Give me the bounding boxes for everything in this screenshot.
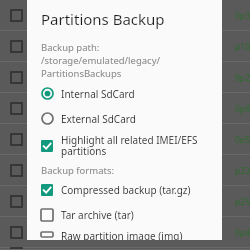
staticText: p25 xyxy=(235,196,250,208)
button[interactable]: Raw partition image (img) xyxy=(41,229,214,240)
staticText: 0p3 xyxy=(235,10,250,22)
button[interactable]: Partition 0p2 xyxy=(0,62,250,93)
staticText: Compressed backup (tar.gz) xyxy=(61,183,191,197)
button[interactable]: Partition p10 xyxy=(0,31,250,62)
button[interactable]: Partition p23 xyxy=(0,155,250,186)
staticText: Highlight all related IMEI/EFS partition… xyxy=(61,133,198,158)
button[interactable]: Partition 0p7 xyxy=(0,248,250,250)
staticText: Backup path: /storage/emulated/legacy/ P… xyxy=(41,41,161,80)
staticText: p10 xyxy=(235,41,250,53)
staticText: 0p5 xyxy=(235,134,250,146)
button[interactable]: Tar archive (tar) xyxy=(41,204,214,225)
staticText: 0p8 xyxy=(235,103,250,115)
button[interactable]: Partition 0p8 xyxy=(0,93,250,124)
staticText: External SdCard xyxy=(61,112,136,126)
staticText: Raw partition image (img) xyxy=(61,229,183,240)
button[interactable]: Highlight all related IMEI/EFS partition… xyxy=(41,133,214,158)
staticText: Internal SdCard xyxy=(61,87,135,101)
staticText: 0p4 xyxy=(235,227,250,239)
button[interactable]: Partition 0p3 xyxy=(0,0,250,31)
button[interactable]: Internal SdCard xyxy=(41,83,214,104)
staticText: Partitions Backup xyxy=(41,9,165,29)
staticText: 0p7 xyxy=(235,248,250,250)
staticText: Tar archive (tar) xyxy=(61,208,134,222)
staticText: Backup formats: xyxy=(41,164,114,177)
staticText: p23 xyxy=(235,165,250,177)
button[interactable]: Partition p25 xyxy=(0,186,250,217)
button[interactable]: Partition 0p4 xyxy=(0,217,250,248)
button[interactable]: Compressed backup (tar.gz) xyxy=(41,179,214,200)
staticText: 0p2 xyxy=(235,72,250,84)
button[interactable]: External SdCard xyxy=(41,108,214,129)
button[interactable]: Partition 0p5 xyxy=(0,124,250,155)
